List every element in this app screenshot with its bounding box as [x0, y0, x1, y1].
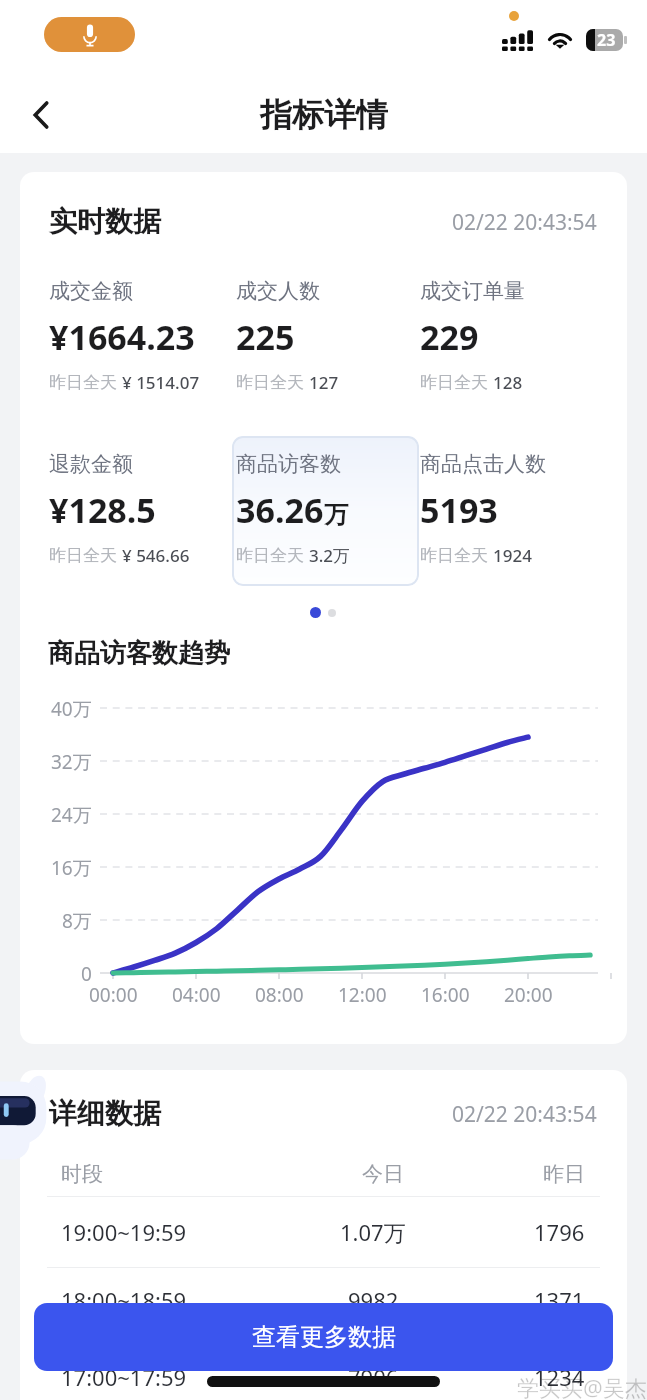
button[interactable]: 17:00~17:59: [20, 1342, 627, 1400]
staticText: 昨日全天: [236, 545, 304, 566]
staticText: 16万: [51, 855, 92, 881]
staticText: 18:00~18:59: [61, 1285, 187, 1315]
staticText: 9982: [348, 1285, 399, 1315]
staticText: 0: [81, 961, 92, 987]
staticText: 7906: [348, 1362, 399, 1392]
button[interactable]: Back: [13, 87, 69, 143]
staticText: 退款金额: [49, 451, 133, 477]
staticText: 02/22 20:43:54: [452, 208, 597, 237]
staticText: 19:00~19:59: [61, 1217, 187, 1247]
staticText: 40万: [51, 696, 92, 722]
staticText: 昨日: [543, 1161, 585, 1187]
staticText: 229: [420, 314, 479, 360]
staticText: ¥ 1514.07: [122, 371, 200, 394]
staticText: 32万: [51, 749, 92, 775]
button[interactable]: 商品点击人数: [420, 451, 604, 571]
button[interactable]: 退款金额: [49, 451, 233, 571]
staticText: 商品访客数趋势: [48, 637, 230, 670]
staticText: 今日: [362, 1161, 404, 1187]
staticText: 1796: [534, 1217, 585, 1247]
staticText: 成交金额: [49, 278, 133, 304]
staticText: 1.07万: [340, 1217, 406, 1247]
staticText: 02/22 20:43:54: [452, 1100, 597, 1129]
staticText: ¥128.5: [49, 487, 156, 533]
staticText: 学买买@吴杰: [517, 1372, 647, 1400]
staticText: 16:00: [421, 982, 470, 1008]
button[interactable]: 成交人数: [236, 278, 420, 398]
staticText: 万: [324, 500, 348, 530]
staticText: 1234: [534, 1362, 585, 1392]
button[interactable]: Recording microphone: [44, 17, 135, 52]
staticText: 23: [597, 29, 616, 51]
button[interactable]: 19:00~19:59: [20, 1197, 627, 1267]
button[interactable]: 商品访客数: [232, 436, 419, 586]
button[interactable]: 成交订单量: [420, 278, 604, 398]
button[interactable]: 查看更多数据: [34, 1303, 613, 1371]
staticText: 查看更多数据: [252, 1322, 396, 1352]
staticText: 36.26: [236, 487, 324, 533]
staticText: 成交订单量: [420, 278, 525, 304]
staticText: 昨日全天: [420, 372, 488, 393]
staticText: 实时数据: [49, 204, 161, 239]
staticText: 3.2万: [309, 544, 351, 567]
staticText: 8万: [62, 908, 92, 934]
staticText: 成交人数: [236, 278, 320, 304]
staticText: 20:00: [504, 982, 553, 1008]
staticText: 昨日全天: [420, 545, 488, 566]
staticText: 128: [493, 371, 523, 394]
staticText: 1371: [534, 1285, 585, 1315]
staticText: 12:00: [338, 982, 387, 1008]
staticText: 昨日全天: [49, 545, 117, 566]
staticText: ¥1664.23: [49, 314, 195, 360]
staticText: 00:00: [89, 982, 138, 1008]
staticText: 225: [236, 314, 295, 360]
staticText: 详细数据: [49, 1096, 161, 1131]
button[interactable]: 18:00~18:59: [20, 1265, 627, 1335]
staticText: 昨日全天: [49, 372, 117, 393]
staticText: ¥ 546.66: [122, 544, 190, 567]
staticText: 商品访客数: [236, 451, 341, 477]
staticText: 1924: [493, 544, 532, 567]
staticText: 商品点击人数: [420, 451, 546, 477]
staticText: 指标详情: [260, 95, 388, 135]
staticText: 127: [309, 371, 339, 394]
staticText: 5193: [420, 487, 498, 533]
staticText: 17:00~17:59: [61, 1362, 187, 1392]
button[interactable]: 成交金额: [49, 278, 233, 398]
staticText: 08:00: [255, 982, 304, 1008]
staticText: 昨日全天: [236, 372, 304, 393]
staticText: 04:00: [172, 982, 221, 1008]
other: Assistant: [0, 1068, 60, 1172]
staticText: 24万: [51, 802, 92, 828]
staticText: 时段: [61, 1161, 103, 1187]
